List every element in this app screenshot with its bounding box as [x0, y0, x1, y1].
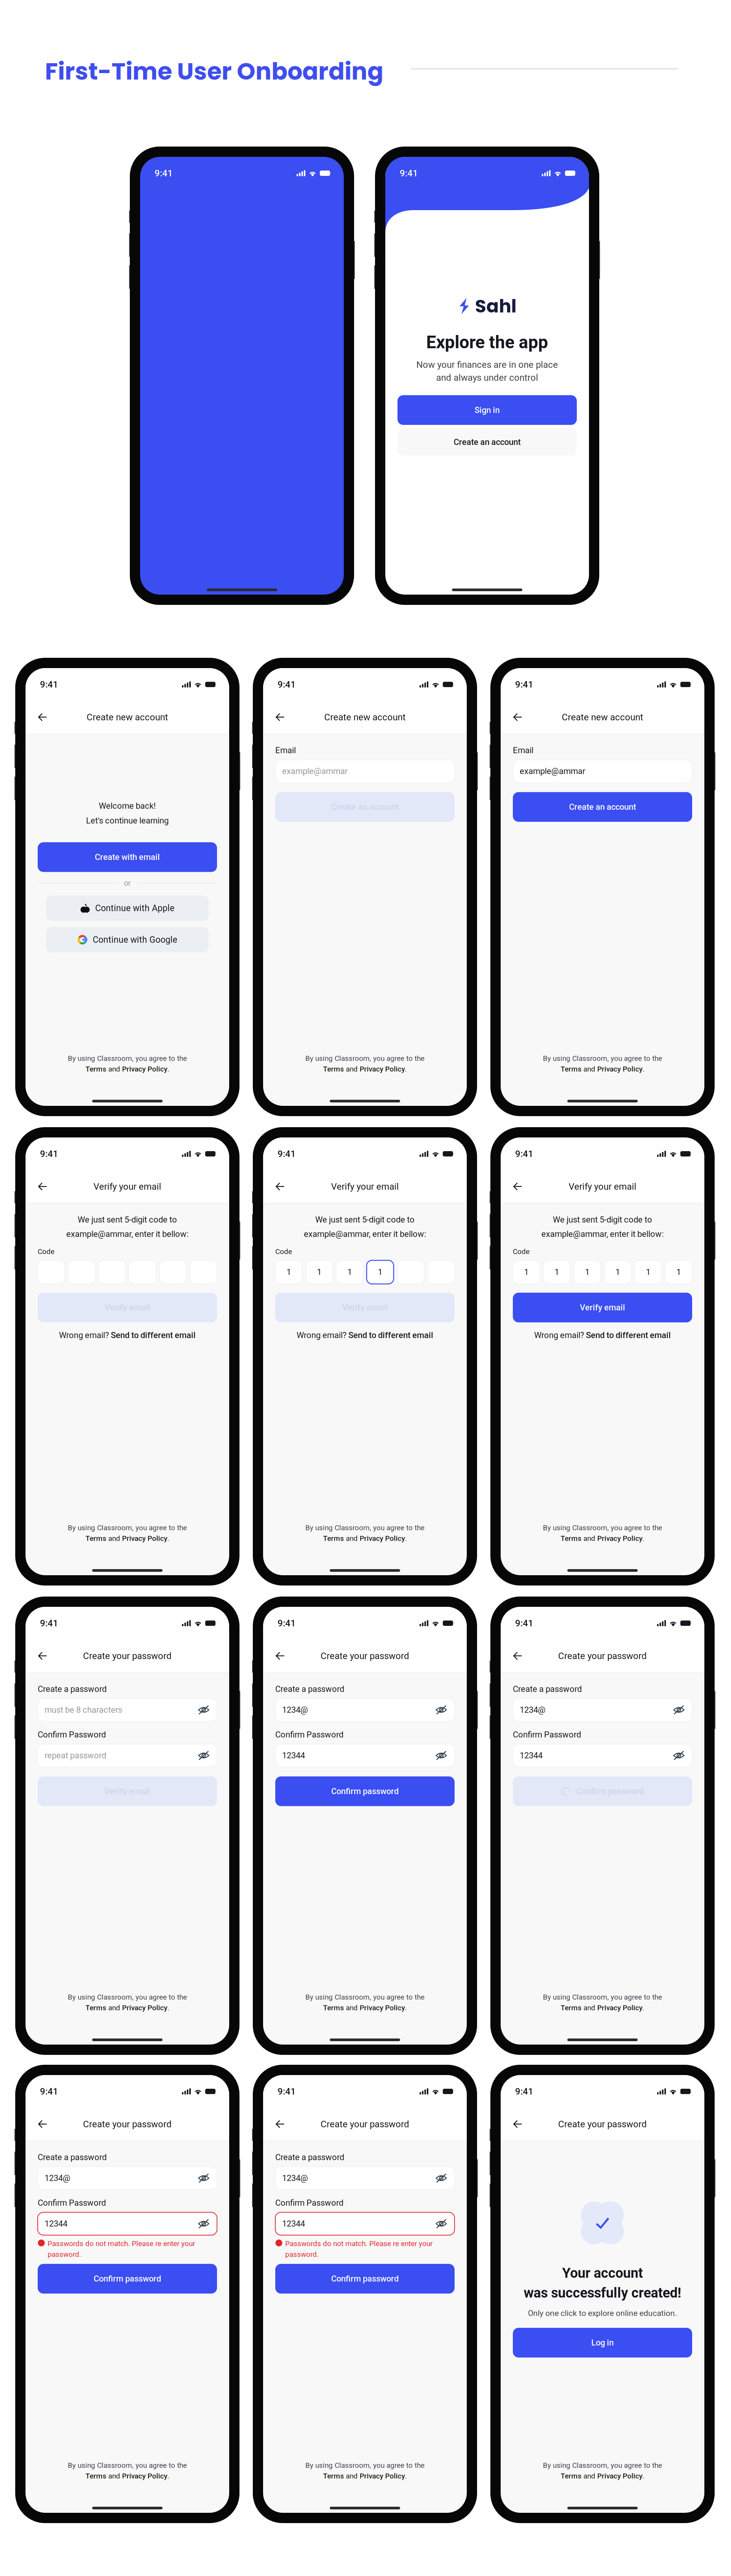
staticText: 1234@	[282, 1705, 308, 1715]
staticText: 9:41	[278, 2086, 296, 2097]
staticText: Verify your email	[331, 1181, 399, 1192]
button[interactable]: Back	[32, 2113, 54, 2135]
staticText: Confirm Password	[275, 2198, 343, 2208]
button[interactable]: Create an account	[397, 428, 577, 456]
staticText: Create a password	[38, 2152, 107, 2162]
staticText: 9:41	[278, 679, 296, 690]
button[interactable]: Verify email	[275, 1293, 455, 1322]
staticText: 9:41	[515, 679, 533, 690]
staticText: Create your password	[321, 2119, 409, 2129]
button[interactable]: Back	[507, 707, 529, 728]
staticText: 9:41	[40, 1618, 58, 1629]
staticText: Terms and Privacy Policy.	[323, 1065, 407, 1073]
staticText: Code	[275, 1247, 292, 1256]
button[interactable]: Confirm password	[513, 1776, 692, 1806]
staticText: Create an account	[331, 802, 398, 812]
button[interactable]: Back	[507, 1645, 529, 1667]
staticText: Terms and Privacy Policy.	[561, 1065, 644, 1073]
staticText: repeat password	[45, 1751, 106, 1760]
button[interactable]: Confirm password	[38, 2264, 217, 2294]
button[interactable]: Back	[32, 707, 54, 728]
staticText: Terms and Privacy Policy.	[85, 1065, 169, 1073]
staticText: Verify your email	[569, 1181, 636, 1192]
button[interactable]: Verify email	[513, 1293, 692, 1322]
button[interactable]: Create with email	[38, 842, 217, 872]
button[interactable]: Back	[507, 2113, 529, 2135]
staticText: First-Time User Onboarding	[45, 55, 383, 88]
staticText: 1234@	[282, 2173, 308, 2183]
button[interactable]: Back	[32, 1645, 54, 1667]
staticText: By using Classroom, you agree to the	[543, 2461, 662, 2470]
staticText: Email	[513, 745, 533, 755]
staticText: Create your password	[558, 1651, 647, 1661]
staticText: Email	[275, 745, 296, 755]
staticText: By using Classroom, you agree to the	[305, 1054, 425, 1063]
staticText: Confirm Password	[513, 1730, 581, 1740]
staticText: 1	[676, 1267, 681, 1277]
staticText: 12344	[520, 1751, 543, 1760]
button[interactable]: Back	[269, 1176, 291, 1197]
staticText: 12344	[282, 2219, 305, 2229]
staticText: Terms and Privacy Policy.	[85, 1534, 169, 1542]
staticText: We just sent 5-digit code to	[78, 1215, 177, 1225]
staticText: Confirm password	[331, 1786, 399, 1796]
staticText: By using Classroom, you agree to the	[543, 1054, 662, 1063]
staticText: By using Classroom, you agree to the	[543, 1523, 662, 1532]
staticText: By using Classroom, you agree to the	[68, 1054, 187, 1063]
staticText: By using Classroom, you agree to the	[305, 2461, 425, 2470]
button[interactable]: Create an account	[513, 792, 692, 822]
staticText: 9:41	[40, 2086, 58, 2097]
button[interactable]: Back	[269, 707, 291, 728]
staticText: Confirm Password	[38, 2198, 106, 2208]
staticText: By using Classroom, you agree to the	[68, 1523, 187, 1532]
button[interactable]: Back	[269, 2113, 291, 2135]
staticText: Continue with Google	[93, 935, 177, 945]
button[interactable]: Verify email	[38, 1776, 217, 1806]
staticText: 1	[615, 1267, 620, 1277]
staticText: We just sent 5-digit code to	[315, 1215, 415, 1225]
staticText: 1	[524, 1267, 529, 1277]
button[interactable]: Confirm password	[275, 1776, 455, 1806]
button[interactable]: Sign in	[397, 395, 577, 425]
staticText: example@ammar, enter it bellow:	[304, 1229, 426, 1239]
staticText: Passwords do not match. Please re enter …	[285, 2239, 433, 2248]
staticText: 1	[347, 1267, 352, 1277]
staticText: Create your password	[83, 1651, 172, 1661]
staticText: Terms and Privacy Policy.	[323, 2004, 407, 2012]
staticText: By using Classroom, you agree to the	[305, 1523, 425, 1532]
staticText: 9:41	[400, 168, 418, 179]
staticText: Code	[513, 1247, 530, 1256]
staticText: Confirm password	[94, 2274, 161, 2284]
button[interactable]: Confirm password	[275, 2264, 455, 2294]
staticText: 1234@	[45, 2173, 70, 2183]
staticText: 1234@	[520, 1705, 546, 1715]
button[interactable]: Log in	[513, 2328, 692, 2357]
button[interactable]: Verify email	[38, 1293, 217, 1322]
staticText: Create an account	[569, 802, 636, 812]
button[interactable]: Continue with Apple	[46, 896, 209, 921]
staticText: By using Classroom, you agree to the	[305, 1993, 425, 2001]
staticText: Terms and Privacy Policy.	[561, 2004, 644, 2012]
button[interactable]: Continue with Google	[46, 927, 209, 952]
staticText: 9:41	[278, 1148, 296, 1159]
staticText: Terms and Privacy Policy.	[561, 2472, 644, 2480]
staticText: Verify email	[105, 1303, 150, 1312]
staticText: 1	[585, 1267, 590, 1277]
staticText: 1	[286, 1267, 291, 1277]
staticText: Create new account	[324, 712, 406, 723]
button[interactable]: Back	[32, 1176, 54, 1197]
button[interactable]: Create an account	[275, 792, 455, 822]
staticText: example@ammar	[520, 766, 585, 776]
button[interactable]: Back	[507, 1176, 529, 1197]
staticText: Passwords do not match. Please re enter …	[48, 2239, 195, 2248]
staticText: Terms and Privacy Policy.	[561, 1534, 644, 1542]
staticText: Your account	[562, 2265, 643, 2281]
staticText: 1	[555, 1267, 559, 1277]
staticText: 1	[317, 1267, 322, 1277]
staticText: Let's continue learning	[86, 816, 169, 826]
button[interactable]: Back	[269, 1645, 291, 1667]
staticText: Confirm Password	[275, 1730, 343, 1740]
staticText: 1	[378, 1267, 382, 1277]
staticText: Terms and Privacy Policy.	[85, 2004, 169, 2012]
staticText: password.	[48, 2250, 81, 2259]
